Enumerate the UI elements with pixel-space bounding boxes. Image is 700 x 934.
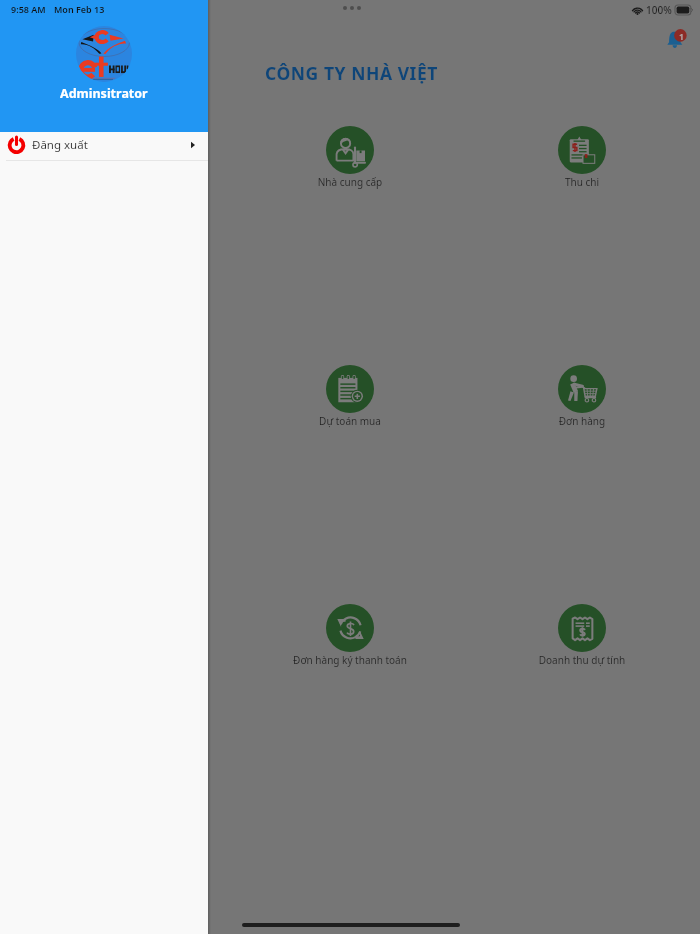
staticText: Adminsitrator [60,85,148,102]
staticText: CÔNG TY NHÀ VIỆT [265,61,438,85]
staticText: Doanh thu dự tính [512,653,652,667]
staticText: Thu chi [512,175,652,189]
button[interactable]: Notifications [666,29,688,51]
staticText: Mon Feb 13 [54,3,105,15]
button[interactable]: Đăng xuất [0,132,208,160]
staticText: Đơn hàng ký thanh toán [280,653,420,667]
button[interactable]: Đơn hàng ký thanh toán [280,604,420,667]
button[interactable]: Nhà cung cấp [280,126,420,189]
staticText: Đăng xuất [32,137,88,153]
button[interactable]: Doanh thu dự tính [512,604,652,667]
staticText: 9:58 AM [11,3,46,15]
staticText: 1 [679,31,684,43]
staticText: 100% [646,3,672,17]
button[interactable]: Dự toán mua [280,365,420,428]
staticText: Đơn hàng [512,414,652,428]
button[interactable]: Thu chi [512,126,652,189]
button[interactable]: Đơn hàng [512,365,652,428]
staticText: Dự toán mua [280,414,420,428]
staticText: Nhà cung cấp [280,175,420,189]
